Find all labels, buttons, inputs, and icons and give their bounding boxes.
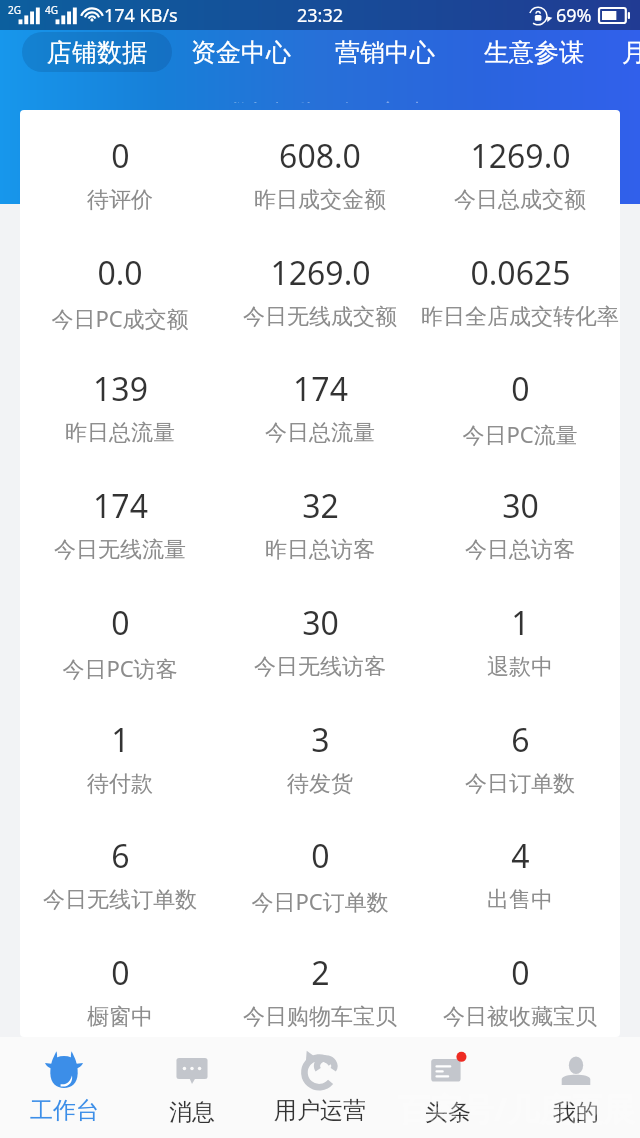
button[interactable]: 30 — [420, 460, 620, 577]
button[interactable]: 头条 — [384, 1037, 512, 1138]
staticText: 3 — [311, 718, 330, 762]
button[interactable]: 0 — [220, 810, 420, 927]
staticText: 消息 — [169, 1098, 215, 1127]
staticText: 百家号/几度夏展 — [398, 1087, 636, 1131]
staticText: 2G — [8, 3, 21, 17]
button[interactable]: 6 — [420, 694, 620, 811]
button[interactable]: 2 — [220, 927, 420, 1037]
staticText: 营销中心 — [335, 37, 435, 68]
staticText: 昨日总流量 — [65, 419, 175, 447]
staticText: 6 — [511, 718, 530, 762]
staticText: 0 — [111, 951, 130, 995]
staticText: 月 — [622, 37, 640, 68]
button[interactable]: 32 — [220, 460, 420, 577]
button[interactable]: 工作台 — [0, 1037, 128, 1138]
staticText: 1269.0 — [470, 134, 571, 178]
staticText: 4 — [511, 834, 530, 878]
staticText: 174 KB/s — [104, 3, 178, 28]
staticText: 头条 — [425, 1098, 471, 1127]
staticText: 1 — [511, 601, 530, 645]
staticText: 139 — [93, 367, 148, 411]
button[interactable]: 1 — [20, 694, 220, 811]
button[interactable]: 用户运营 — [256, 1037, 384, 1138]
button[interactable]: 月 — [622, 32, 640, 72]
staticText: 我的 — [553, 1098, 599, 1127]
staticText: 昨日总访客 — [265, 536, 375, 564]
staticText: 橱窗中 — [87, 1003, 153, 1031]
button[interactable]: 我的 — [512, 1037, 640, 1138]
staticText: 待付款 — [87, 770, 153, 798]
staticText: 今日总成交额 — [454, 186, 586, 214]
button[interactable]: 3 — [220, 694, 420, 811]
staticText: 0 — [311, 834, 330, 878]
button[interactable]: 店铺数据 — [22, 32, 172, 72]
button[interactable]: 139 — [20, 343, 220, 460]
button[interactable]: 0 — [20, 927, 220, 1037]
staticText: 资金中心 — [191, 37, 291, 68]
staticText: 今日PC流量 — [462, 419, 578, 449]
button[interactable]: 1 — [420, 577, 620, 694]
button[interactable]: 0.0 — [20, 227, 220, 344]
staticText: 今日无线访客 — [254, 653, 386, 681]
staticText: 0.0625 — [470, 251, 571, 295]
staticText: 0 — [511, 367, 530, 411]
staticText: 今日PC成交额 — [51, 303, 189, 333]
button[interactable]: 消息 — [128, 1037, 256, 1138]
staticText: 今日无线成交额 — [243, 303, 397, 331]
staticText: 用户运营 — [274, 1096, 366, 1125]
button[interactable]: 6 — [20, 810, 220, 927]
staticText: 0 — [511, 951, 530, 995]
button[interactable]: 608.0 — [220, 110, 420, 227]
button[interactable]: 0 — [20, 577, 220, 694]
staticText: 数据概览 昨日实时 — [229, 96, 423, 103]
button[interactable]: 1269.0 — [220, 227, 420, 344]
button[interactable]: 0 — [420, 927, 620, 1037]
staticText: 今日购物车宝贝 — [243, 1003, 397, 1031]
staticText: 4G — [45, 3, 58, 17]
button[interactable]: 4 — [420, 810, 620, 927]
button[interactable]: 1269.0 — [420, 110, 620, 227]
staticText: 今日无线流量 — [54, 536, 186, 564]
staticText: 今日被收藏宝贝 — [443, 1003, 597, 1031]
staticText: 今日PC访客 — [62, 653, 178, 683]
staticText: 昨日成交金额 — [254, 186, 386, 214]
button[interactable]: 174 — [20, 460, 220, 577]
staticText: 今日总访客 — [465, 536, 575, 564]
staticText: 0.0 — [97, 251, 143, 295]
button[interactable]: 174 — [220, 343, 420, 460]
staticText: 174 — [93, 484, 148, 528]
staticText: 608.0 — [279, 134, 361, 178]
button[interactable]: 0 — [420, 343, 620, 460]
staticText: 今日订单数 — [465, 770, 575, 798]
staticText: 待发货 — [287, 770, 353, 798]
button[interactable]: 营销中心 — [335, 32, 435, 72]
button[interactable]: 资金中心 — [191, 32, 291, 72]
staticText: 0 — [111, 134, 130, 178]
staticText: 6 — [111, 834, 130, 878]
button[interactable]: 30 — [220, 577, 420, 694]
staticText: 1 — [111, 718, 130, 762]
staticText: 1269.0 — [270, 251, 371, 295]
staticText: 30 — [302, 601, 339, 645]
staticText: 今日总流量 — [265, 419, 375, 447]
staticText: 退款中 — [487, 653, 553, 681]
staticText: 23:32 — [297, 3, 344, 28]
staticText: 店铺数据 — [47, 37, 147, 68]
staticText: 今日无线订单数 — [43, 886, 197, 914]
staticText: 昨日全店成交转化率 — [421, 303, 619, 331]
staticText: 0 — [111, 601, 130, 645]
staticText: 32 — [302, 484, 339, 528]
staticText: 出售中 — [487, 886, 553, 914]
staticText: 工作台 — [30, 1096, 99, 1125]
staticText: 30 — [502, 484, 539, 528]
button[interactable]: 0.0625 — [420, 227, 620, 344]
button[interactable]: 0 — [20, 110, 220, 227]
staticText: 生意参谋 — [484, 37, 584, 68]
staticText: 2 — [311, 951, 330, 995]
staticText: 待评价 — [87, 186, 153, 214]
staticText: 今日PC订单数 — [251, 886, 389, 916]
staticText: 69% — [556, 3, 592, 28]
button[interactable]: 生意参谋 — [484, 32, 584, 72]
staticText: 174 — [293, 367, 348, 411]
